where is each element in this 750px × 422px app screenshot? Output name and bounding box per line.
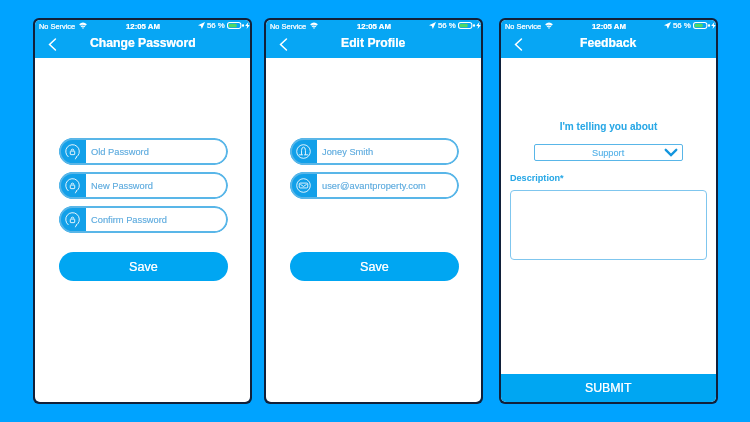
staticText: 12:05 AM [357, 22, 391, 31]
button[interactable]: Back [507, 31, 529, 57]
staticText: 56 % [207, 21, 225, 30]
staticText: SUBMIT [585, 381, 632, 395]
button[interactable]: Description input [510, 190, 707, 260]
button[interactable]: user@avantproperty.com [290, 172, 459, 199]
button[interactable]: Back [41, 31, 63, 57]
staticText: Edit Profile [341, 36, 406, 50]
staticText: 12:05 AM [126, 22, 160, 31]
staticText: No Service [39, 22, 76, 30]
button[interactable]: Back [272, 31, 294, 57]
staticText: No Service [505, 22, 542, 30]
staticText: 56 % [438, 21, 456, 30]
staticText: No Service [270, 22, 307, 30]
staticText: Support [592, 148, 625, 158]
staticText: Old Password [91, 147, 149, 157]
button[interactable]: New Password [59, 172, 228, 199]
button[interactable]: Save [59, 252, 228, 281]
staticText: user@avantproperty.com [322, 181, 426, 191]
button[interactable]: SUBMIT [501, 374, 716, 402]
staticText: I'm telling you about [510, 121, 707, 132]
staticText: Description* [510, 173, 564, 183]
button[interactable]: Save [290, 252, 459, 281]
staticText: 12:05 AM [592, 22, 626, 31]
staticText: Confirm Password [91, 215, 167, 225]
staticText: Feedback [580, 36, 637, 50]
staticText: New Password [91, 181, 154, 191]
staticText: Save [360, 260, 389, 274]
staticText: Change Password [90, 36, 196, 50]
button[interactable]: Confirm Password [59, 206, 228, 233]
button[interactable]: Old Password [59, 138, 228, 165]
staticText: Save [129, 260, 158, 274]
staticText: Joney Smith [322, 147, 374, 157]
button[interactable]: Joney Smith [290, 138, 459, 165]
button[interactable]: Select category [534, 144, 683, 161]
staticText: 56 % [673, 21, 691, 30]
